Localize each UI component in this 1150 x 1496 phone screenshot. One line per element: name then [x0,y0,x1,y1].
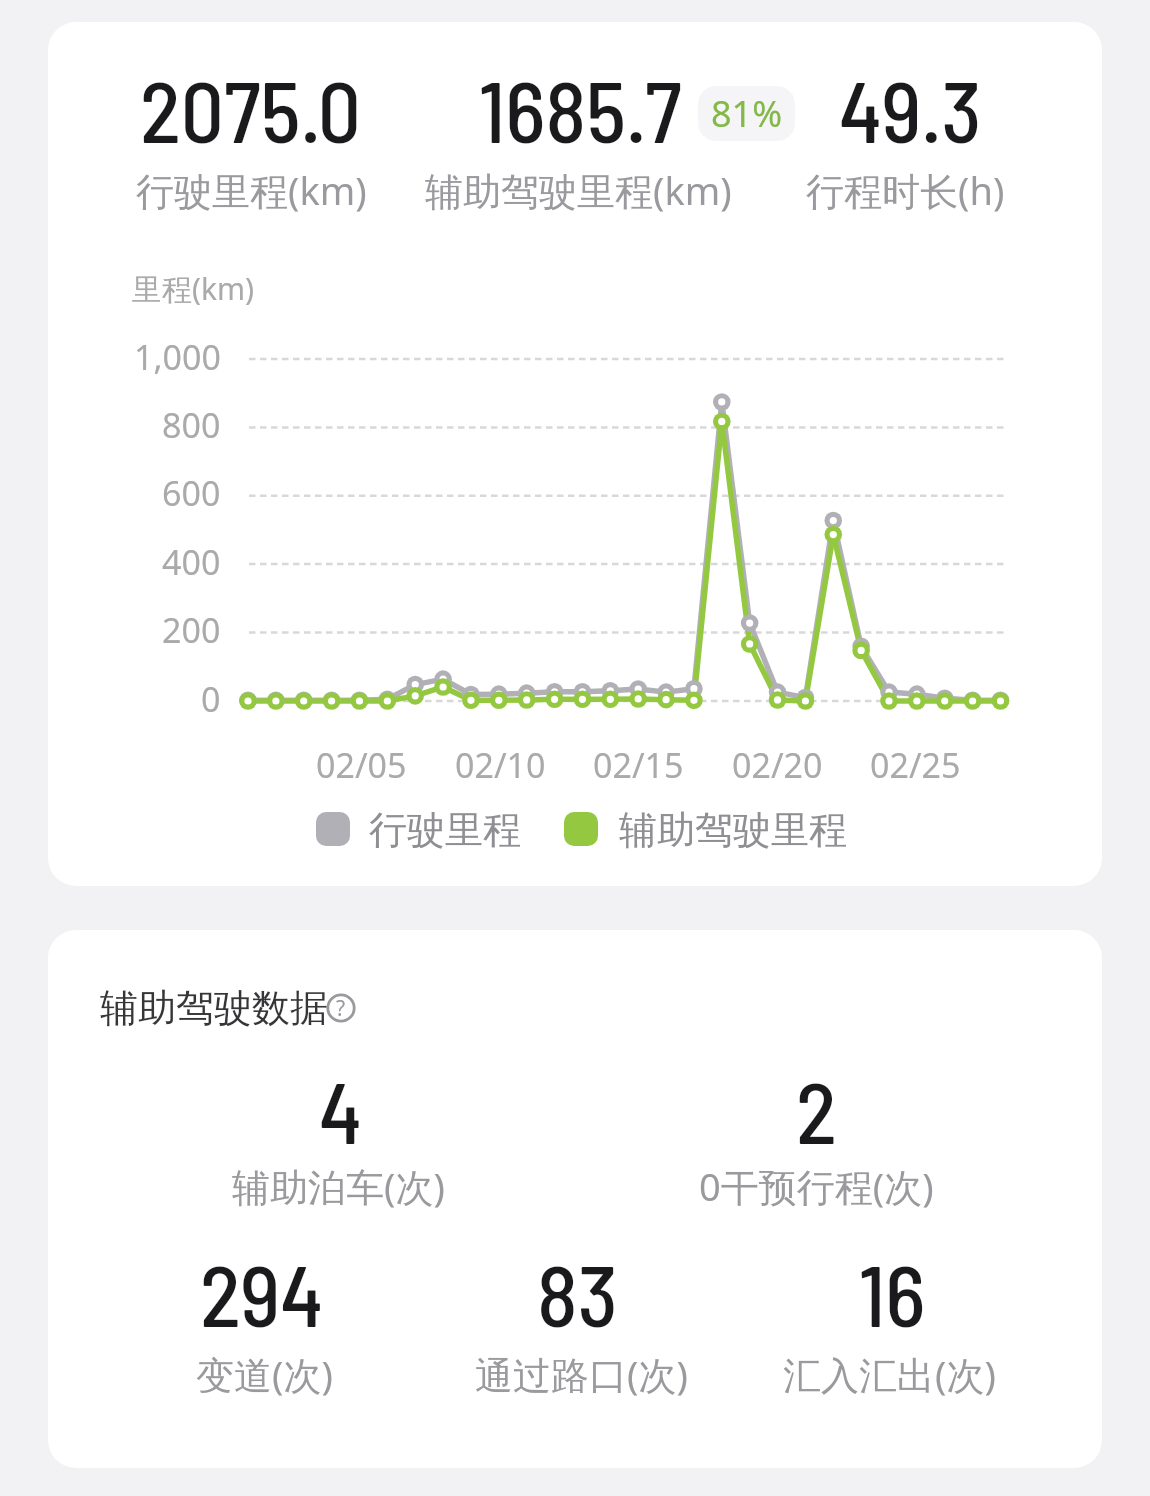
staticText: ? [336,994,346,1023]
staticText: 2 [796,1059,837,1161]
staticText: 0 [201,676,221,722]
staticText: 行程时长(h) [806,164,1005,216]
staticText: 1685.7 [479,58,682,160]
staticText: 辅助驾驶里程 [619,806,847,854]
staticText: 49.3 [839,58,982,160]
staticText: 294 [200,1242,324,1344]
staticText: 4 [319,1059,362,1161]
button[interactable]: ? [326,993,356,1023]
staticText: 81% [711,89,783,138]
staticText: 1,000 [134,334,221,380]
staticText: 02/25 [870,742,961,788]
staticText: 0干预行程(次) [699,1160,934,1212]
staticText: 02/10 [455,742,546,788]
staticText: 16 [859,1242,926,1344]
staticText: 辅助驾驶里程(km) [425,164,732,216]
staticText: 辅助驾驶数据 [100,984,328,1032]
staticText: 400 [162,539,221,585]
staticText: 02/05 [316,742,407,788]
staticText: 行驶里程(km) [136,164,367,216]
staticText: 里程(km) [132,268,255,309]
staticText: 800 [162,402,221,448]
staticText: 02/15 [593,742,684,788]
staticText: 2075.0 [140,58,361,160]
staticText: 变道(次) [196,1348,333,1400]
staticText: 辅助泊车(次) [232,1160,445,1212]
staticText: 02/20 [732,742,823,788]
staticText: 行驶里程 [369,806,521,854]
staticText: 通过路口(次) [475,1348,688,1400]
staticText: 83 [537,1242,618,1344]
staticText: 600 [162,470,221,516]
staticText: 200 [162,607,221,653]
staticText: 汇入汇出(次) [783,1348,996,1400]
